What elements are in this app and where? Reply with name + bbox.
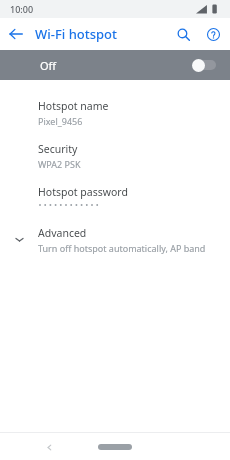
staticText: Hotspot name <box>38 99 109 113</box>
staticText: Wi-Fi hotspot <box>35 25 118 43</box>
button[interactable]: Home <box>98 444 132 450</box>
button[interactable]: Advanced <box>0 218 230 261</box>
staticText: 10:00 <box>10 3 34 15</box>
button[interactable]: Off <box>0 50 230 80</box>
button[interactable]: Back <box>40 438 58 456</box>
staticText: Hotspot password <box>38 185 128 199</box>
staticText: Off <box>40 58 57 73</box>
button[interactable]: Hotspot name <box>0 89 230 132</box>
staticText: Turn off hotspot automatically, AP band <box>38 242 206 254</box>
button[interactable]: Help <box>198 19 228 49</box>
button[interactable]: Back <box>0 18 32 50</box>
button[interactable]: Hotspot password <box>0 175 230 218</box>
button[interactable]: Search <box>168 19 198 49</box>
staticText: Security <box>38 142 78 156</box>
staticText: WPA2 PSK <box>38 158 81 170</box>
button[interactable]: Security <box>0 132 230 175</box>
staticText: Advanced <box>38 226 87 240</box>
staticText: Pixel_9456 <box>38 115 83 127</box>
